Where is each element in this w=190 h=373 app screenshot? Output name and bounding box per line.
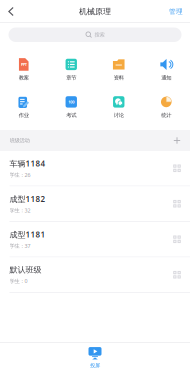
button[interactable]: 讨论 bbox=[95, 95, 142, 119]
staticText: 管理 bbox=[169, 7, 183, 16]
staticText: 教案 bbox=[19, 74, 29, 81]
button[interactable]: 作业 bbox=[0, 95, 47, 119]
button[interactable]: 返回 bbox=[0, 0, 22, 23]
staticText: 通知 bbox=[161, 74, 171, 81]
button[interactable]: 车辆1184 bbox=[0, 151, 190, 186]
staticText: 资料 bbox=[114, 74, 124, 81]
staticText: 机械原理 bbox=[79, 7, 111, 16]
button[interactable]: PPT bbox=[0, 57, 47, 81]
button[interactable]: 投屏 bbox=[75, 346, 115, 370]
staticText: 学生：26 bbox=[9, 171, 30, 178]
staticText: 讨论 bbox=[114, 112, 124, 119]
button[interactable]: 章节 bbox=[47, 57, 95, 81]
staticText: 作业 bbox=[19, 112, 29, 119]
staticText: 搜索 bbox=[94, 31, 104, 38]
button[interactable]: 成型1181 bbox=[0, 222, 190, 257]
staticText: 成型1181 bbox=[9, 229, 45, 240]
staticText: 默认班级 bbox=[9, 265, 41, 275]
button[interactable]: 添加班级 bbox=[168, 130, 185, 151]
button[interactable]: 成型1182 bbox=[0, 186, 190, 222]
staticText: 投屏 bbox=[90, 362, 100, 369]
staticText: 成型1182 bbox=[9, 194, 45, 204]
staticText: 100 bbox=[68, 99, 74, 105]
button[interactable]: 默认班级 bbox=[0, 257, 190, 293]
staticText: 统计 bbox=[161, 112, 171, 119]
button[interactable]: 通知 bbox=[142, 57, 190, 81]
staticText: 章节 bbox=[66, 74, 76, 81]
staticText: PPT bbox=[21, 62, 27, 67]
staticText: 考试 bbox=[66, 112, 76, 119]
button[interactable]: 管理 bbox=[162, 0, 190, 23]
button[interactable]: 100 bbox=[47, 95, 95, 119]
staticText: 学生：32 bbox=[9, 207, 30, 214]
staticText: 车辆1184 bbox=[9, 158, 45, 169]
staticText: 班级活动 bbox=[9, 137, 29, 144]
staticText: 学生：37 bbox=[9, 242, 30, 249]
button[interactable]: 资料 bbox=[95, 57, 142, 81]
button[interactable]: 统计 bbox=[142, 95, 190, 119]
staticText: 学生：0 bbox=[9, 277, 27, 284]
